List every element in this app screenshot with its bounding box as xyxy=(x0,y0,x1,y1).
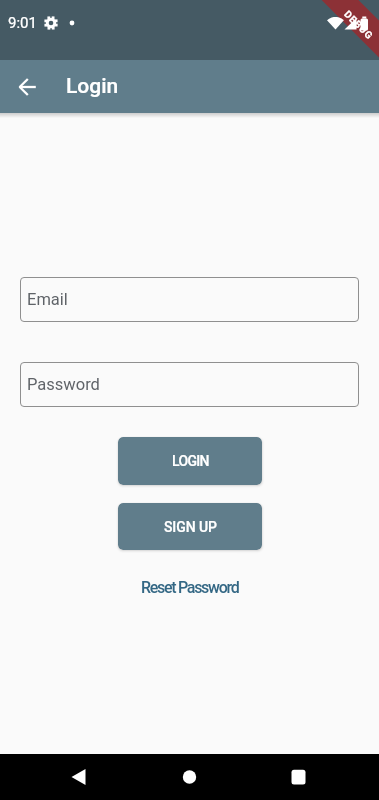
staticText: Email xyxy=(27,290,68,309)
staticText: Password xyxy=(27,375,100,394)
staticText: Login xyxy=(66,74,119,99)
staticText: LOGIN xyxy=(172,453,209,469)
button[interactable] xyxy=(127,754,253,800)
staticText: DEBUG xyxy=(341,8,375,42)
button[interactable]: Password xyxy=(20,362,359,407)
button[interactable] xyxy=(253,754,379,800)
button[interactable]: Reset Password xyxy=(141,578,239,597)
button[interactable]: Email xyxy=(20,277,359,322)
button[interactable]: SIGN UP xyxy=(118,503,262,550)
button[interactable] xyxy=(0,60,56,113)
staticText: SIGN UP xyxy=(164,519,217,535)
staticText: Reset Password xyxy=(141,578,239,597)
button[interactable]: LOGIN xyxy=(118,437,262,485)
staticText: 9:01 xyxy=(8,14,37,32)
button[interactable] xyxy=(0,754,127,800)
